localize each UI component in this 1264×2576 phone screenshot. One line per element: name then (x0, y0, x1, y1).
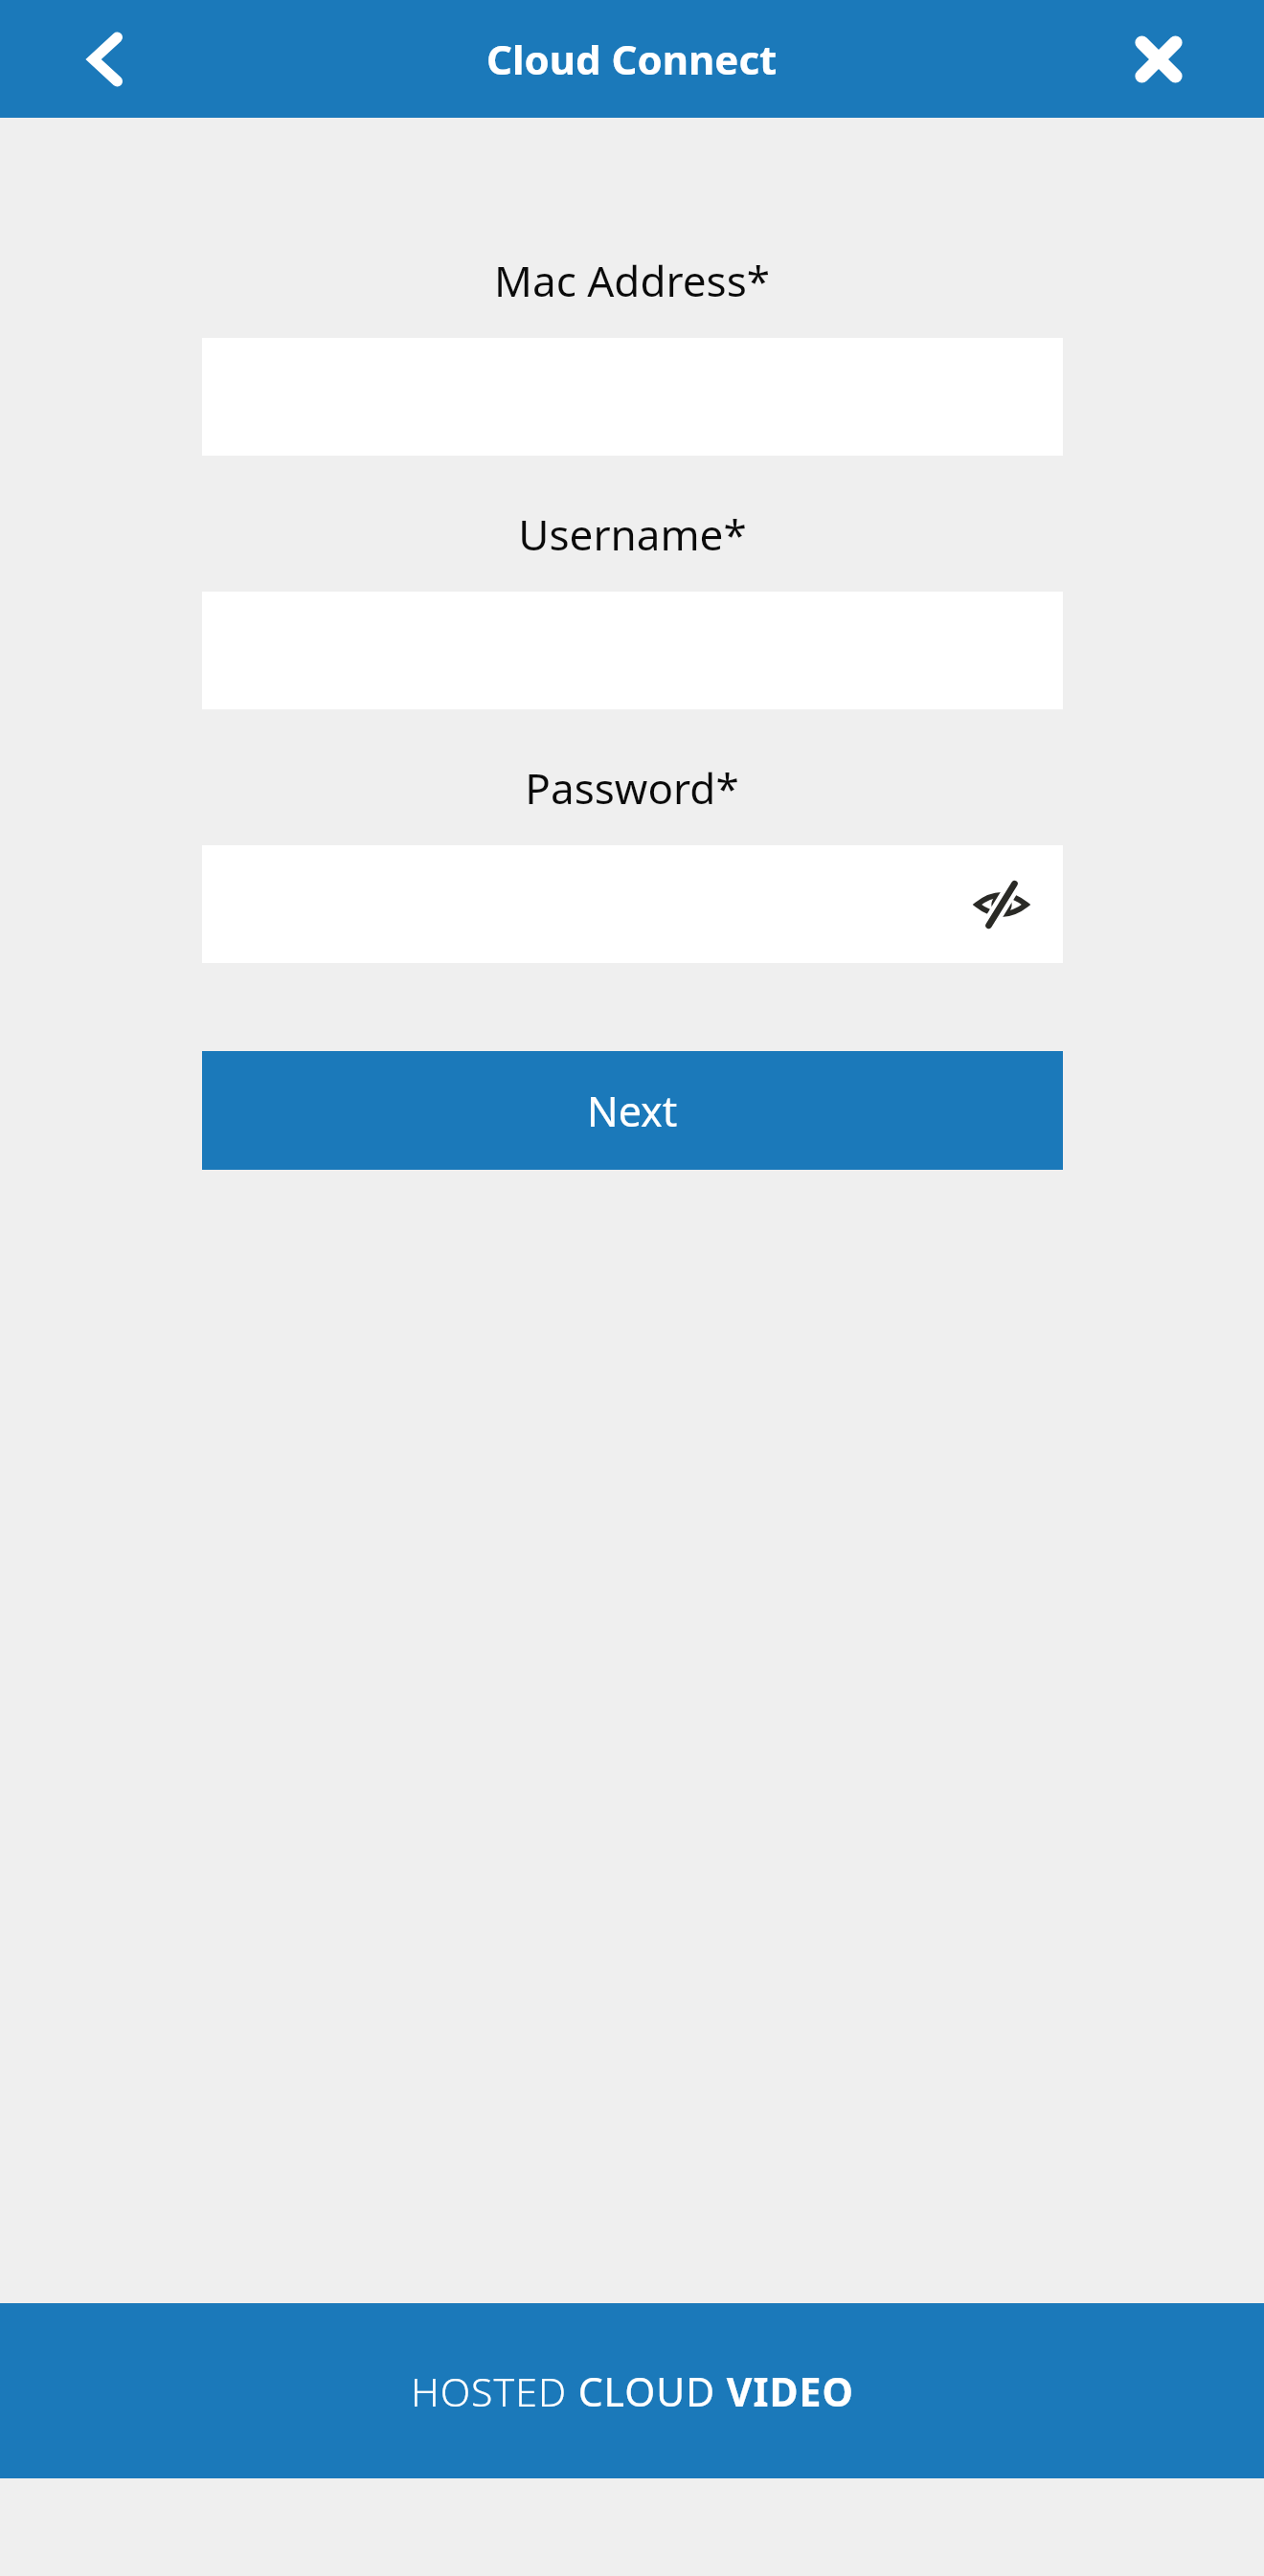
button[interactable]: Next (202, 1051, 1063, 1170)
staticText: Mac Address* (494, 252, 770, 309)
staticText: HOSTED CLOUD VIDEO (411, 2364, 854, 2418)
button[interactable]: Show password (959, 862, 1044, 947)
staticText: Next (587, 1083, 678, 1139)
staticText: Cloud Connect (486, 32, 778, 86)
staticText: Username* (518, 505, 747, 563)
staticText: Password* (525, 759, 739, 817)
button[interactable]: Show password (202, 845, 1063, 963)
button[interactable]: Back (59, 13, 151, 105)
button[interactable]: Close (1113, 13, 1205, 105)
